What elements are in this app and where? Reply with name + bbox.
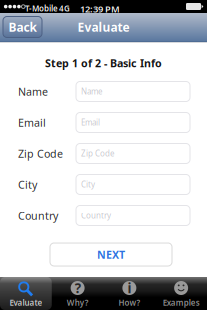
staticText: i (127, 279, 131, 297)
staticText: Evaluate (77, 19, 129, 35)
staticText: Zip Code (81, 148, 115, 159)
staticText: Zip Code (18, 146, 63, 161)
staticText: ? (75, 279, 81, 297)
staticText: Country (81, 210, 111, 221)
staticText: Evaluate (9, 297, 42, 308)
staticText: T-Mobile (25, 3, 58, 14)
staticText: Back (8, 19, 36, 35)
staticText: Examples (163, 297, 200, 308)
button[interactable]: ? (52, 277, 104, 310)
staticText: Name (81, 86, 103, 97)
staticText: How? (118, 297, 140, 308)
staticText: NEXT (97, 247, 125, 262)
staticText: 12:39 PM (80, 3, 120, 15)
staticText: Name (18, 84, 48, 99)
button[interactable]: i (103, 277, 155, 310)
staticText: City (81, 179, 95, 190)
button[interactable]: Examples (155, 277, 207, 310)
button[interactable]: NEXT (50, 243, 172, 266)
staticText: Step 1 of 2 - Basic Info (45, 56, 162, 70)
staticText: City (18, 177, 37, 192)
staticText: Country (18, 208, 58, 223)
button[interactable]: Evaluate (0, 277, 52, 310)
staticText: Why? (67, 297, 89, 308)
staticText: Email (18, 115, 46, 130)
staticText: 4G (59, 3, 70, 14)
staticText: Email (81, 117, 100, 128)
button[interactable]: Back (3, 16, 42, 37)
